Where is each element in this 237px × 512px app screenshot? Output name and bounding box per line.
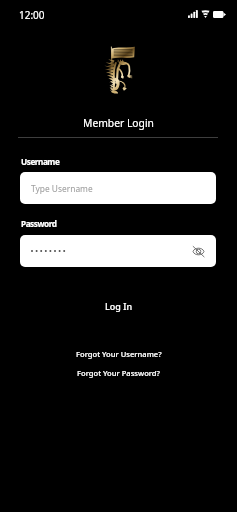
staticText: Forgot Your Username? bbox=[76, 349, 162, 359]
staticText: Member Login bbox=[0, 116, 237, 130]
staticText: 12:00 bbox=[19, 8, 45, 22]
button[interactable]: Type Username bbox=[20, 172, 216, 204]
staticText: Username bbox=[21, 156, 60, 167]
button[interactable]: Log In bbox=[0, 294, 237, 318]
staticText: Type Username bbox=[31, 183, 93, 194]
staticText: Log In bbox=[105, 300, 133, 312]
button[interactable]: Forgot Your Password? bbox=[0, 365, 237, 381]
staticText: Password bbox=[21, 218, 57, 229]
staticText: Forgot Your Password? bbox=[77, 368, 160, 378]
button[interactable]: Show password bbox=[189, 242, 207, 260]
button[interactable]: Forgot Your Username? bbox=[0, 346, 237, 362]
button[interactable]: Show password bbox=[20, 235, 216, 267]
